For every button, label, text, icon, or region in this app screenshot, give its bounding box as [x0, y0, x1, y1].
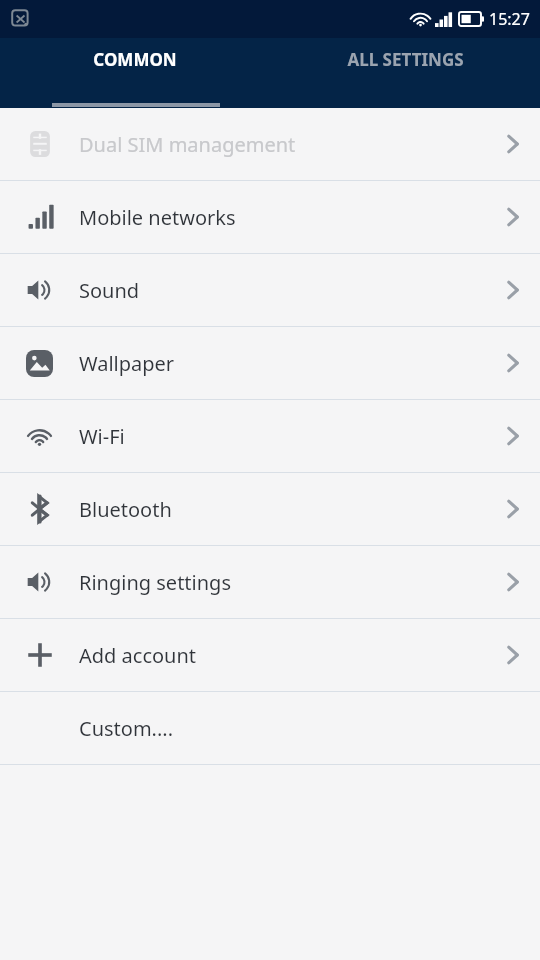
- staticText: Wallpaper: [79, 350, 486, 377]
- button[interactable]: Dual SIM management: [0, 108, 540, 180]
- button[interactable]: Bluetooth: [0, 473, 540, 545]
- button[interactable]: Mobile networks: [0, 181, 540, 253]
- button[interactable]: Custom....: [0, 692, 540, 764]
- staticText: Custom....: [79, 715, 486, 742]
- staticText: Dual SIM management: [79, 131, 486, 158]
- staticText: COMMON: [93, 48, 177, 71]
- button[interactable]: Wallpaper: [0, 327, 540, 399]
- button[interactable]: Sound: [0, 254, 540, 326]
- button[interactable]: Add account: [0, 619, 540, 691]
- staticText: Wi-Fi: [79, 423, 486, 450]
- button[interactable]: ALL SETTINGS: [270, 48, 540, 71]
- staticText: Bluetooth: [79, 496, 486, 523]
- staticText: 15:27: [489, 8, 530, 30]
- button[interactable]: Ringing settings: [0, 546, 540, 618]
- staticText: ALL SETTINGS: [347, 48, 464, 71]
- button[interactable]: COMMON: [0, 48, 270, 71]
- button[interactable]: Wi-Fi: [0, 400, 540, 472]
- staticText: Add account: [79, 642, 486, 669]
- staticText: Mobile networks: [79, 204, 486, 231]
- staticText: Sound: [79, 277, 486, 304]
- staticText: Ringing settings: [79, 569, 486, 596]
